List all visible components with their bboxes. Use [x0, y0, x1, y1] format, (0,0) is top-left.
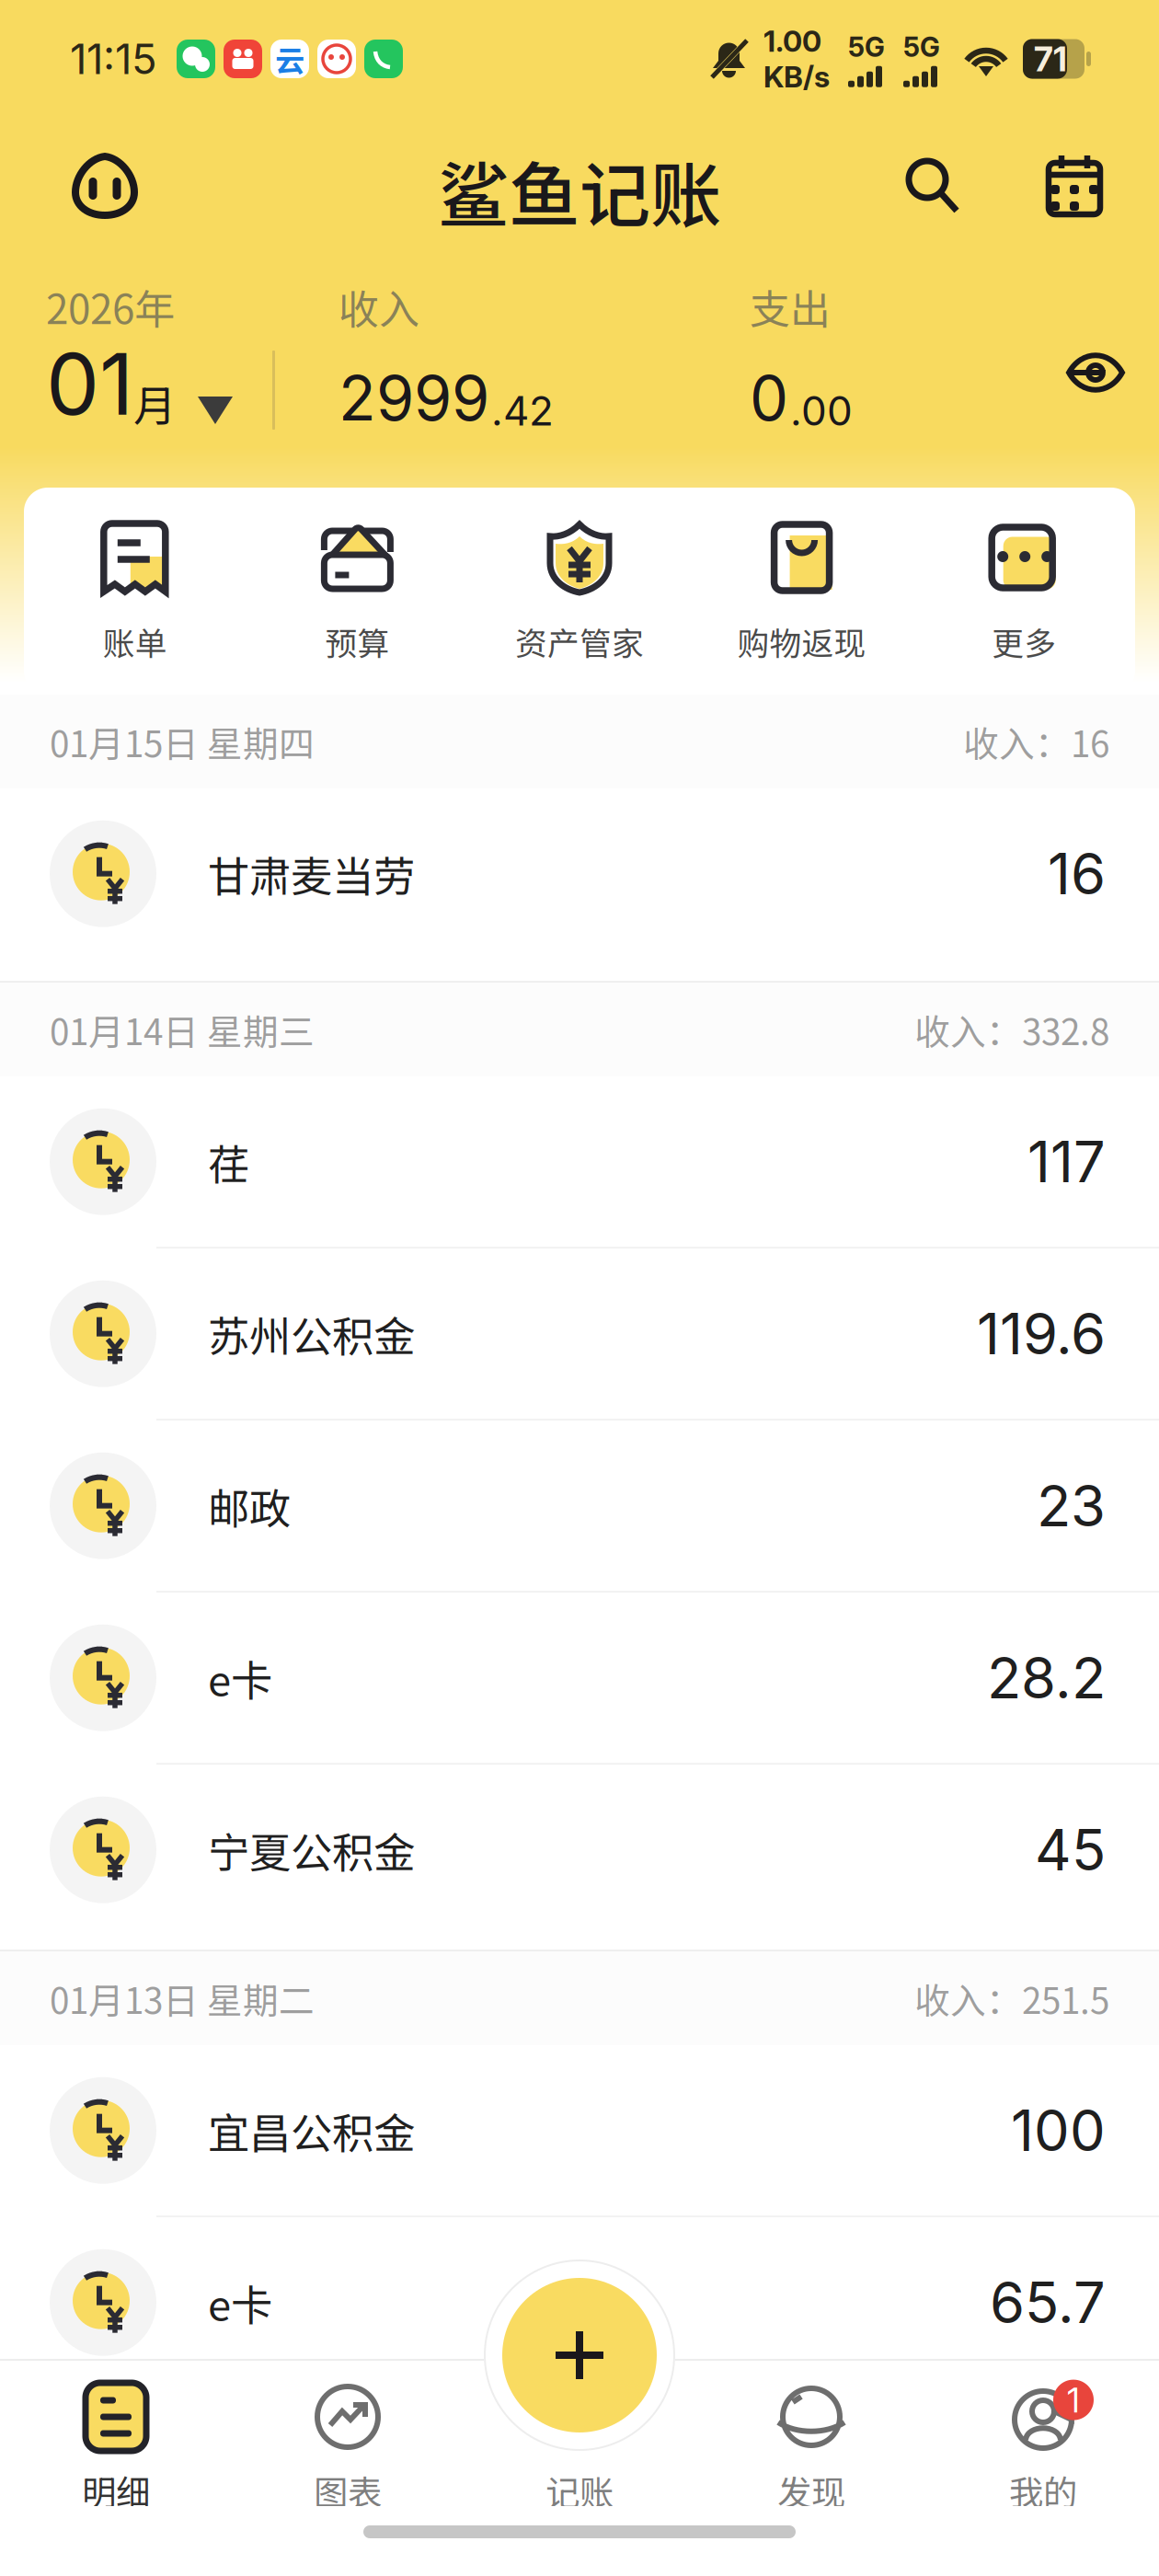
staticText: 宁夏公积金	[208, 1820, 415, 1880]
staticText: e卡	[208, 2272, 272, 2333]
staticText: 5G	[848, 31, 885, 63]
button[interactable]: 邮政	[0, 1421, 1159, 1591]
staticText: 01月14日 星期三	[50, 1004, 315, 1055]
staticText: 预算	[325, 618, 389, 664]
staticText: 71	[1034, 38, 1067, 80]
button[interactable]: 明细	[0, 2381, 232, 2515]
staticText: 荏	[208, 1132, 249, 1192]
staticText: 1.00	[763, 23, 821, 59]
staticText: 2999	[339, 361, 489, 435]
button[interactable]: 宁夏公积金	[0, 1765, 1159, 1950]
staticText: e卡	[208, 1648, 272, 1708]
staticText: KB/s	[763, 59, 830, 94]
button[interactable]: 1	[927, 2381, 1159, 2515]
staticText: .00	[790, 386, 853, 435]
button[interactable]: 发现	[695, 2381, 927, 2515]
staticText: 记账	[545, 2466, 614, 2515]
staticText: 2026年	[46, 277, 175, 336]
staticText: 资产管家	[515, 618, 644, 664]
staticText: 收入	[339, 277, 419, 336]
staticText: 支出	[750, 277, 831, 336]
staticText: 45	[1035, 1816, 1106, 1884]
button[interactable]: Calendar	[1045, 138, 1104, 234]
staticText: .42	[491, 386, 554, 435]
button[interactable]: e卡	[0, 1593, 1159, 1763]
staticText: 收入：332.8	[914, 1004, 1109, 1055]
staticText: 100	[1011, 2096, 1106, 2165]
staticText: 65.7	[990, 2268, 1106, 2337]
staticText: 苏州公积金	[208, 1304, 415, 1364]
staticText: 收入：16	[963, 716, 1109, 767]
staticText: 云	[275, 38, 304, 80]
staticText: 01	[46, 333, 133, 435]
staticText: 我的	[1009, 2466, 1077, 2515]
button[interactable]: 资产管家	[468, 519, 691, 664]
button[interactable]: Profile	[57, 138, 153, 234]
staticText: 购物返现	[737, 618, 866, 664]
button[interactable]: Add record	[484, 2260, 675, 2451]
staticText: 明细	[82, 2466, 150, 2515]
staticText: 5G	[903, 31, 940, 63]
staticText: 28.2	[987, 1644, 1106, 1712]
staticText: 16	[1048, 840, 1106, 908]
button[interactable]: 苏州公积金	[0, 1249, 1159, 1419]
staticText: 0	[750, 361, 788, 435]
button[interactable]: 甘肃麦当劳	[0, 789, 1159, 981]
button[interactable]: 记账	[464, 2381, 695, 2515]
staticText: 11:15	[70, 34, 157, 84]
staticText: 23	[1037, 1472, 1106, 1540]
staticText: 01月15日 星期四	[50, 716, 315, 767]
button[interactable]: 购物返现	[691, 519, 913, 664]
staticText: 发现	[777, 2466, 845, 2515]
button[interactable]: e卡	[0, 2217, 1159, 2388]
staticText: 宜昌公积金	[208, 2100, 415, 2161]
staticText: 119.6	[977, 1300, 1106, 1368]
staticText: 鲨鱼记账	[438, 139, 721, 242]
button[interactable]: Search	[905, 138, 960, 234]
button[interactable]: Hide amounts	[1056, 338, 1135, 408]
button[interactable]: Select month	[46, 297, 272, 435]
button[interactable]: 宜昌公积金	[0, 2045, 1159, 2216]
button[interactable]: 荏	[0, 1077, 1159, 1247]
button[interactable]: 更多	[913, 519, 1135, 664]
button[interactable]: 预算	[246, 519, 468, 664]
staticText: 邮政	[208, 1476, 291, 1536]
staticText: 账单	[103, 618, 167, 664]
staticText: 收入：251.5	[914, 1973, 1109, 2024]
staticText: 117	[1027, 1128, 1106, 1196]
staticText: 01月13日 星期二	[50, 1973, 315, 2024]
button[interactable]: 图表	[232, 2381, 464, 2515]
staticText: 月	[133, 372, 177, 434]
staticText: 1	[1067, 2379, 1080, 2421]
staticText: 甘肃麦当劳	[208, 844, 415, 904]
button[interactable]: 账单	[24, 519, 246, 664]
staticText: 更多	[992, 618, 1056, 664]
staticText: 图表	[314, 2466, 382, 2515]
